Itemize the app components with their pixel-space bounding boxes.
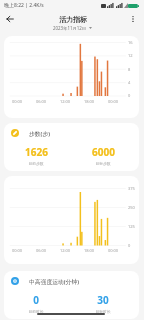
staticText: 00:00 xyxy=(8,99,26,104)
staticText: 16 xyxy=(128,40,133,45)
button[interactable]: Back xyxy=(3,12,17,26)
staticText: 18:00 xyxy=(80,99,98,104)
staticText: 8 xyxy=(128,67,131,72)
staticText: 步数(步) xyxy=(29,130,51,138)
staticText: 250 xyxy=(128,205,135,210)
staticText: 6000 xyxy=(92,145,115,159)
staticText: 00:00 xyxy=(104,99,122,104)
staticText: 0 xyxy=(128,93,131,98)
staticText: 目标时长 xyxy=(95,309,111,314)
staticText: 125 xyxy=(128,224,135,229)
staticText: 目前时长 xyxy=(28,309,44,314)
staticText: 0 xyxy=(33,293,39,307)
staticText: 晚上8:22 | 2.4K/s xyxy=(4,2,44,9)
staticText: 目标步数 xyxy=(95,161,111,166)
staticText: 目前步数 xyxy=(28,161,44,166)
staticText: 活力指标 xyxy=(59,15,87,24)
button[interactable]: More options xyxy=(126,12,140,26)
staticText: 中高强度运动(分钟) xyxy=(29,278,79,286)
staticText: 06:00 xyxy=(32,99,50,104)
staticText: 30 xyxy=(97,293,109,307)
staticText: 0 xyxy=(128,243,131,248)
staticText: 12:00 xyxy=(56,248,74,253)
staticText: 4 xyxy=(128,80,131,85)
staticText: 00:00 xyxy=(104,248,122,253)
staticText: 12 xyxy=(128,53,133,58)
staticText: 2023年11月12日 xyxy=(53,25,87,31)
button[interactable]: 步数(步) xyxy=(4,123,139,171)
staticText: 1626 xyxy=(25,145,48,159)
button[interactable]: 中高强度运动(分钟) xyxy=(4,271,139,319)
staticText: 375 xyxy=(128,186,135,191)
staticText: 00:00 xyxy=(8,248,26,253)
staticText: 12:00 xyxy=(56,99,74,104)
staticText: 18:00 xyxy=(80,248,98,253)
staticText: 06:00 xyxy=(32,248,50,253)
